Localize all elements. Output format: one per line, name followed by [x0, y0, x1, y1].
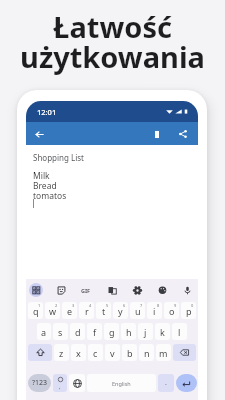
button[interactable]: c [88, 344, 103, 361]
staticText: m [159, 347, 168, 359]
staticText: , [59, 383, 61, 391]
button[interactable]: f [87, 323, 102, 340]
staticText: 8 [157, 303, 160, 308]
staticText: 3 [72, 303, 75, 308]
staticText: ?123 [32, 378, 48, 388]
staticText: 12:01 [37, 107, 57, 117]
staticText: 5 [106, 303, 109, 308]
staticText: n [144, 347, 150, 359]
staticText: q [33, 305, 39, 317]
staticText: d [75, 326, 81, 338]
button[interactable]: ?123 [28, 374, 51, 392]
button[interactable]: g [104, 323, 119, 340]
button[interactable]: m [156, 344, 171, 361]
button[interactable]: r [79, 302, 94, 319]
staticText: 4 [89, 303, 92, 308]
staticText: 2 [55, 303, 58, 308]
button[interactable]: Stickers [54, 283, 68, 297]
staticText: użytkowania [0, 37, 225, 76]
staticText: Łatwość [0, 7, 225, 46]
button[interactable]: t [96, 302, 111, 319]
button[interactable]: h [121, 323, 136, 340]
button[interactable]: English [87, 374, 156, 392]
staticText: u [135, 305, 141, 317]
button[interactable]: q [28, 302, 43, 319]
staticText: z [59, 347, 64, 359]
staticText: o [169, 305, 175, 317]
staticText: GIF [81, 287, 91, 294]
button[interactable]: a [37, 323, 51, 340]
staticText: English [112, 380, 131, 387]
staticText: c [93, 347, 98, 359]
staticText: v [110, 347, 115, 359]
staticText: Shopping List [33, 152, 84, 163]
button[interactable]: y [113, 302, 128, 319]
staticText: 7 [140, 303, 143, 308]
staticText: l [178, 326, 181, 338]
button[interactable]: p [181, 302, 196, 319]
button[interactable]: d [70, 323, 85, 340]
button[interactable]: i [147, 302, 162, 319]
staticText: g [109, 326, 115, 338]
button[interactable]: Backspace [173, 344, 196, 361]
button[interactable]: x [71, 344, 86, 361]
button[interactable]: e [62, 302, 77, 319]
button[interactable]: Shift [28, 344, 52, 361]
staticText: h [126, 326, 132, 338]
staticText: a [41, 326, 47, 338]
staticText: p [186, 305, 192, 317]
button[interactable]: Settings [130, 283, 144, 297]
button[interactable]: z [54, 344, 69, 361]
staticText: x [76, 347, 81, 359]
staticText: t [102, 305, 106, 317]
button[interactable]: Enter [176, 374, 197, 392]
staticText: 9 [174, 303, 177, 308]
button[interactable]: Clipboard [105, 283, 119, 297]
button[interactable]: . [158, 374, 174, 392]
button[interactable]: b [122, 344, 137, 361]
staticText: 0 [191, 303, 194, 308]
staticText: w [49, 305, 57, 317]
staticText: 1 [38, 303, 41, 308]
staticText: e [67, 305, 73, 317]
button[interactable]: Share [175, 126, 191, 142]
staticText: s [58, 326, 63, 338]
staticText: k [160, 326, 165, 338]
button[interactable]: Voice input [180, 283, 194, 297]
button[interactable]: u [130, 302, 145, 319]
button[interactable]: o [164, 302, 179, 319]
button[interactable]: v [105, 344, 120, 361]
button[interactable]: l [172, 323, 187, 340]
staticText: 6 [123, 303, 126, 308]
staticText: . [165, 378, 167, 388]
staticText: Milk Bread tomatos [33, 170, 67, 201]
button[interactable]: Change language [69, 374, 85, 392]
button[interactable]: j [138, 323, 153, 340]
staticText: j [144, 326, 147, 338]
staticText: r [85, 305, 89, 317]
staticText: i [153, 305, 156, 317]
button[interactable]: s [53, 323, 68, 340]
button[interactable]: Symbols [29, 283, 43, 297]
staticText: f [93, 326, 97, 338]
button[interactable]: Delete [149, 126, 165, 142]
button[interactable]: k [155, 323, 170, 340]
button[interactable]: n [139, 344, 154, 361]
staticText: y [118, 305, 123, 317]
button[interactable]: Back [31, 126, 47, 142]
button[interactable]: Themes [155, 283, 169, 297]
button[interactable]: w [45, 302, 60, 319]
button[interactable]: Emoji, comma [53, 374, 67, 392]
staticText: b [127, 347, 133, 359]
button[interactable]: GIF [79, 283, 93, 297]
